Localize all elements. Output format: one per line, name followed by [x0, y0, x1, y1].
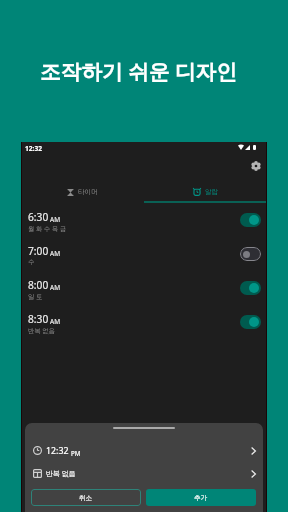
staticText: AM [50, 249, 61, 258]
staticText: 알람 [205, 188, 219, 196]
button[interactable]: 취소 [31, 489, 141, 506]
staticText: AM [50, 215, 61, 224]
button[interactable]: 8:00 [21, 272, 267, 306]
button[interactable]: 6:30 [21, 204, 267, 238]
button[interactable]: 반복 없음 [25, 462, 263, 485]
staticText: 12:32 [46, 445, 69, 457]
button[interactable]: 7:00 [21, 238, 267, 272]
button[interactable]: Alarm enabled [240, 315, 261, 329]
staticText: PM [71, 449, 81, 457]
button[interactable]: Alarm enabled [240, 281, 261, 295]
staticText: 조작하기 쉬운 디자인 [40, 57, 237, 85]
staticText: 8:00 [28, 278, 49, 292]
staticText: 추가 [194, 494, 208, 502]
button[interactable]: Alarm enabled [240, 213, 261, 227]
staticText: 6:30 [28, 210, 49, 224]
staticText: AM [50, 283, 61, 292]
button[interactable]: 12:32 [25, 439, 263, 462]
staticText: 7:00 [28, 244, 49, 258]
staticText: 반복 없음 [28, 326, 55, 335]
staticText: 타이머 [78, 188, 98, 196]
button[interactable]: 알람 [144, 182, 267, 201]
staticText: 월 화 수 목 금 [28, 224, 67, 233]
staticText: 반복 없음 [46, 469, 76, 479]
staticText: 일 토 [28, 292, 43, 301]
staticText: 8:30 [28, 312, 49, 326]
staticText: 12:32 [25, 144, 42, 153]
button[interactable]: Settings [251, 161, 261, 171]
button[interactable]: 타이머 [21, 182, 144, 201]
button[interactable]: Alarm disabled [240, 247, 261, 261]
button[interactable]: 추가 [146, 489, 256, 506]
staticText: 취소 [79, 494, 93, 502]
staticText: 수 [28, 258, 35, 266]
staticText: AM [50, 317, 61, 326]
button[interactable]: 8:30 [21, 306, 267, 340]
